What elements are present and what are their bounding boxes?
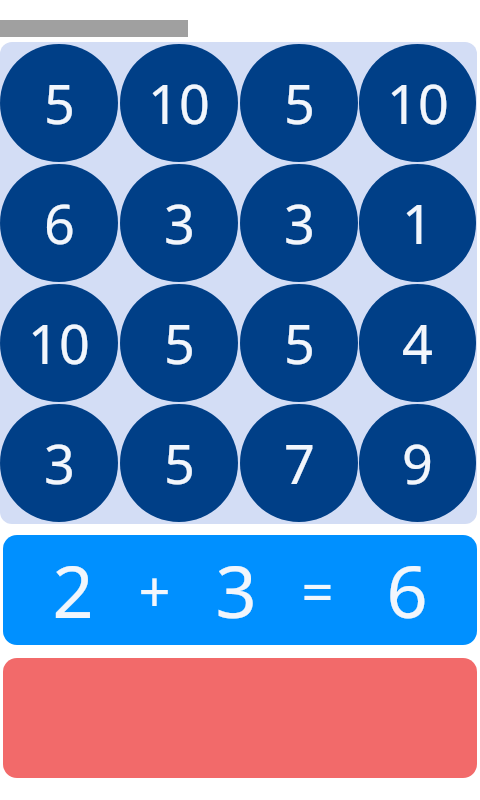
button[interactable]: 5 — [119, 283, 239, 403]
staticText: 10 — [387, 66, 449, 140]
staticText: 3 — [44, 426, 75, 500]
button[interactable]: 3 — [239, 163, 359, 283]
button[interactable]: Answer area — [3, 658, 477, 778]
button[interactable]: 5 — [239, 43, 359, 163]
staticText: 5 — [284, 306, 315, 380]
button[interactable]: 6 — [0, 163, 119, 283]
staticText: 3 — [164, 186, 195, 260]
staticText: 9 — [402, 426, 433, 500]
staticText: 5 — [44, 66, 75, 140]
button[interactable]: 5 — [239, 283, 359, 403]
staticText: 5 — [284, 66, 315, 140]
button[interactable]: 10 — [0, 283, 119, 403]
staticText: 2 — [52, 541, 94, 639]
button[interactable]: 7 — [239, 403, 359, 523]
button[interactable]: 3 — [0, 403, 119, 523]
staticText: 10 — [148, 66, 210, 140]
button[interactable]: 1 — [359, 163, 476, 283]
button[interactable]: 10 — [359, 43, 476, 163]
staticText: 3 — [215, 541, 257, 639]
button[interactable]: 9 — [359, 403, 476, 523]
staticText: 6 — [386, 541, 428, 639]
staticText: = — [301, 552, 334, 628]
staticText: 1 — [402, 186, 433, 260]
staticText: 5 — [164, 426, 195, 500]
button[interactable]: 5 — [0, 43, 119, 163]
button[interactable]: 4 — [359, 283, 476, 403]
staticText: 5 — [164, 306, 195, 380]
staticText: 4 — [402, 306, 433, 380]
button[interactable]: 3 — [119, 163, 239, 283]
button[interactable]: 2 — [3, 535, 477, 645]
staticText: 3 — [284, 186, 315, 260]
staticText: 10 — [28, 306, 90, 380]
staticText: 6 — [44, 186, 75, 260]
staticText: + — [138, 552, 171, 628]
button[interactable]: 5 — [119, 403, 239, 523]
button[interactable]: 10 — [119, 43, 239, 163]
staticText: 7 — [284, 426, 315, 500]
